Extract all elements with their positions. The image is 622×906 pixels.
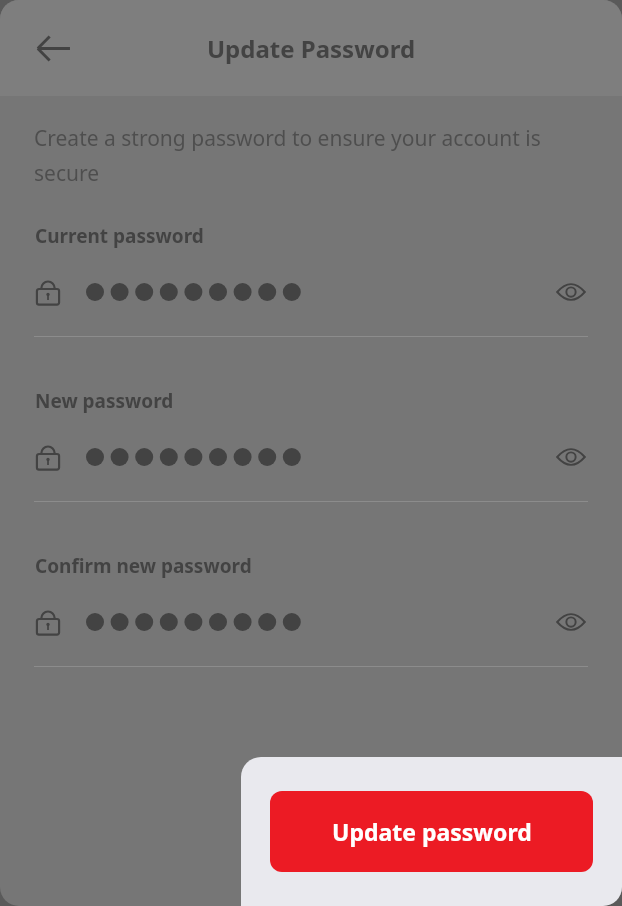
staticText: New password xyxy=(35,388,174,414)
button[interactable]: Show password xyxy=(0,434,622,480)
button[interactable]: Back xyxy=(25,20,81,76)
button[interactable]: Show password xyxy=(548,269,594,315)
staticText: Update Password xyxy=(0,32,622,65)
staticText: Confirm new password xyxy=(35,553,252,579)
button[interactable]: Show password xyxy=(548,599,594,645)
button[interactable]: Show password xyxy=(0,599,622,645)
staticText: Update password xyxy=(332,816,532,847)
staticText: Create a strong password to ensure your … xyxy=(34,124,584,187)
button[interactable]: Show password xyxy=(0,269,622,315)
staticText: Current password xyxy=(35,223,204,249)
button[interactable]: Update password xyxy=(270,791,593,872)
button[interactable]: Show password xyxy=(548,434,594,480)
